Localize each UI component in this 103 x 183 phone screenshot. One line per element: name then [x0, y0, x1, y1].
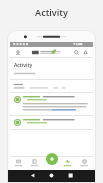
button[interactable]: Library	[26, 156, 42, 170]
button[interactable]: Activity	[59, 156, 76, 170]
button[interactable]	[10, 116, 93, 129]
staticText: Activity	[35, 6, 68, 18]
button[interactable]: Search	[72, 48, 81, 57]
button[interactable]	[10, 93, 93, 115]
button[interactable]: Add	[46, 153, 58, 165]
button[interactable]: Catalog	[10, 156, 26, 170]
button[interactable]: Settings	[76, 156, 93, 170]
button[interactable]: Logo	[32, 49, 62, 56]
button[interactable]: Notifications	[81, 48, 90, 57]
button[interactable]: Profile	[13, 48, 22, 57]
staticText: Activity	[14, 62, 33, 69]
